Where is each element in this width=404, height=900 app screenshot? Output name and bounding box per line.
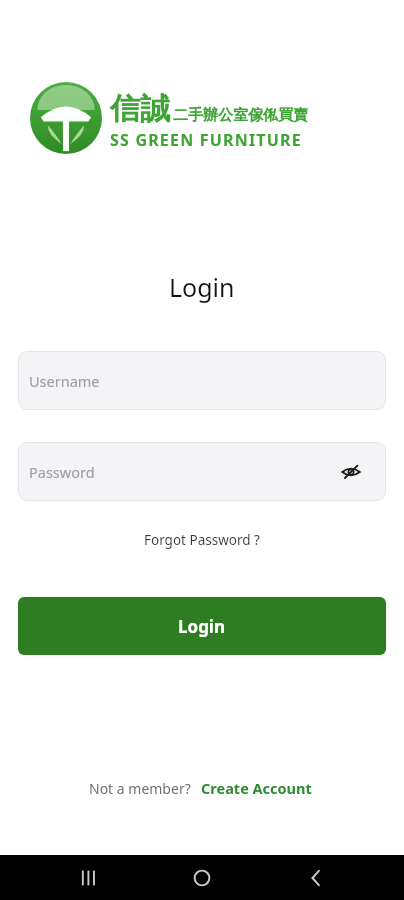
staticText: 信誠	[110, 90, 170, 128]
staticText: 二手辦公室傢俬買賣	[173, 106, 308, 125]
staticText: Login	[169, 270, 235, 304]
button[interactable]: Home	[180, 856, 224, 900]
staticText: Forgot Password ?	[144, 531, 260, 549]
button[interactable]: Create Account	[198, 775, 315, 801]
button[interactable]: Username	[18, 351, 386, 410]
staticText: Login	[178, 615, 226, 638]
button[interactable]: Password	[18, 442, 386, 501]
staticText: SS GREEN FURNITURE	[110, 129, 302, 151]
staticText: Create Account	[201, 778, 312, 798]
staticText: Username	[29, 371, 100, 391]
staticText: Password	[29, 462, 95, 482]
button[interactable]: Show password	[336, 457, 366, 487]
button[interactable]: Forgot Password ?	[136, 527, 268, 553]
button[interactable]: Recent apps	[66, 856, 110, 900]
button[interactable]: Back	[294, 856, 338, 900]
staticText: Not a member?	[89, 779, 191, 798]
button[interactable]: Login	[18, 597, 386, 655]
